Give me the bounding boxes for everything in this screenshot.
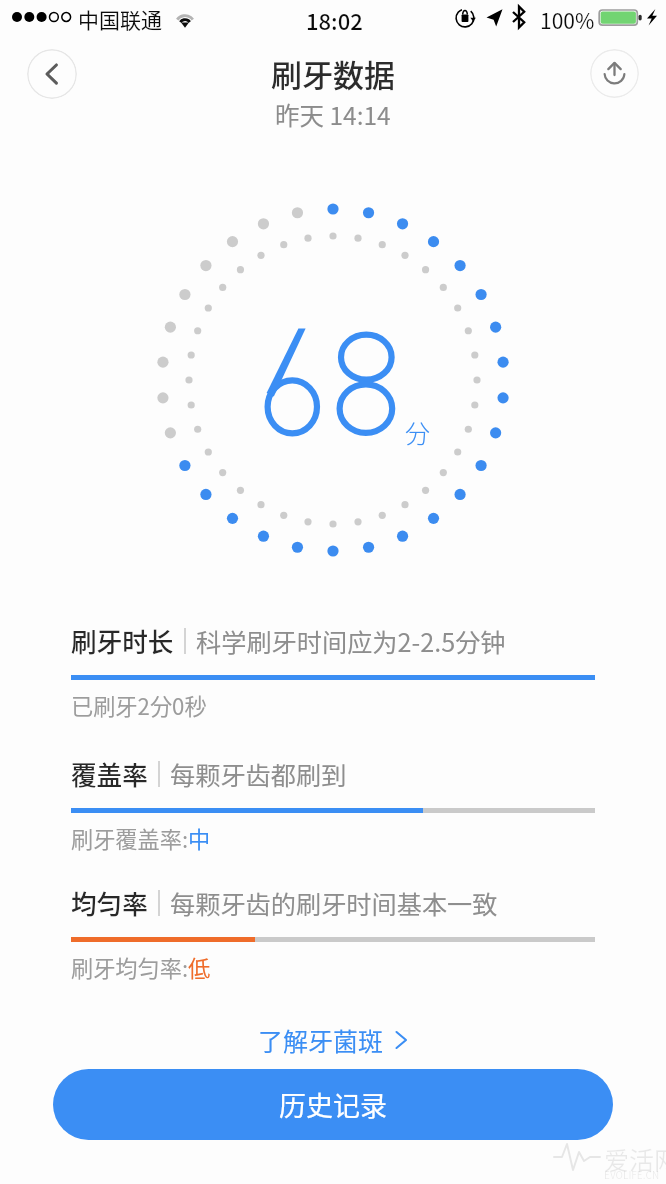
staticText: 均匀率 [71, 884, 148, 921]
button[interactable]: 历史记录 [53, 1069, 613, 1140]
staticText: 18:02 [306, 4, 363, 36]
staticText: 刷牙时长 [71, 622, 174, 659]
staticText: EVOLIFE.CN [604, 1167, 660, 1181]
button[interactable]: Back [27, 49, 77, 99]
staticText: 覆盖率 [71, 755, 148, 792]
staticText: 刷牙数据 [271, 51, 395, 96]
staticText: 历史记录 [279, 1085, 387, 1124]
staticText: 科学刷牙时间应为2-2.5分钟 [196, 623, 506, 659]
staticText: 已刷牙2分0秒 [71, 689, 207, 721]
staticText: 刷牙覆盖率:中 [71, 822, 211, 854]
staticText: 100% [540, 5, 595, 35]
button[interactable]: Share [590, 49, 639, 98]
staticText: 了解牙菌斑 [258, 1022, 384, 1058]
staticText: 每颗牙齿的刷牙时间基本一致 [170, 885, 498, 921]
staticText: 每颗牙齿都刷到 [170, 756, 347, 792]
staticText: 昨天 14:14 [275, 97, 391, 132]
staticText: 刷牙均匀率:低 [71, 951, 211, 983]
button[interactable]: 了解牙菌斑 [248, 1016, 418, 1064]
staticText: 中国联通 [78, 4, 162, 34]
staticText: 爱活网 [604, 1141, 666, 1177]
staticText: 分 [405, 414, 431, 450]
